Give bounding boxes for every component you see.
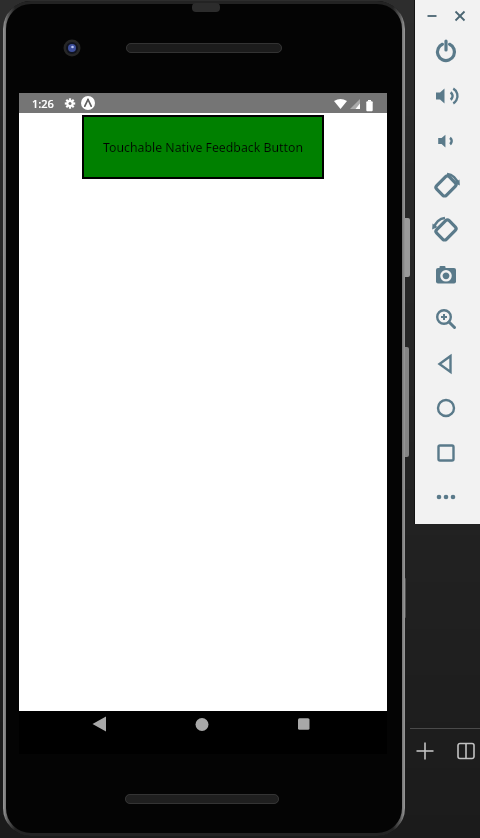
staticText: 1:26 — [32, 96, 54, 111]
button[interactable]: Touchable Native Feedback Button — [82, 115, 324, 179]
button[interactable] — [430, 170, 462, 202]
button[interactable] — [430, 80, 462, 112]
button[interactable] — [430, 481, 462, 513]
button[interactable] — [430, 303, 462, 335]
button[interactable] — [430, 214, 462, 246]
button[interactable] — [444, 0, 476, 32]
button[interactable] — [430, 437, 462, 469]
button[interactable] — [416, 0, 448, 32]
button[interactable] — [430, 259, 462, 291]
button[interactable] — [430, 348, 462, 380]
button[interactable] — [409, 735, 441, 767]
button[interactable] — [450, 735, 480, 767]
staticText: Touchable Native Feedback Button — [103, 139, 303, 156]
button[interactable] — [430, 36, 462, 68]
button[interactable] — [430, 125, 462, 157]
button[interactable] — [430, 392, 462, 424]
